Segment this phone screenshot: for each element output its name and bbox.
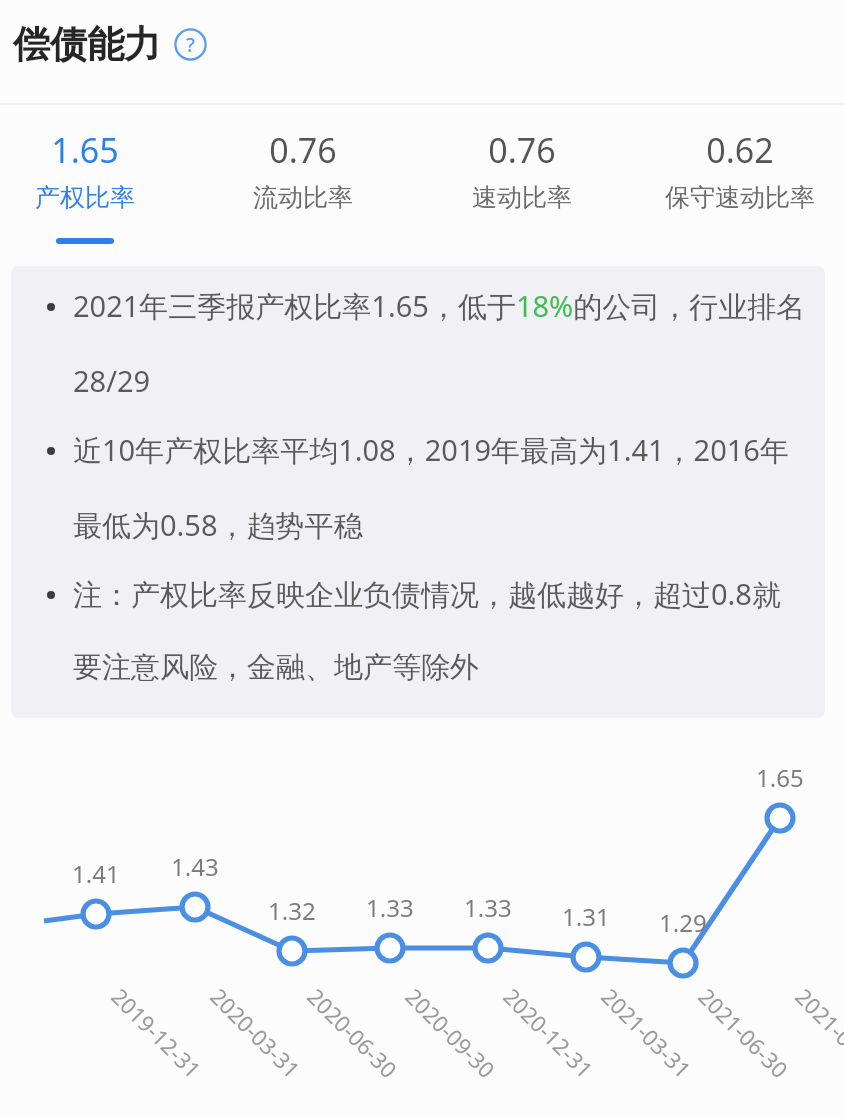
- staticText: 注：产权比率反映企业负债情况，越低越好，超过0.8就要注意风险，金融、地产等除外: [73, 574, 809, 685]
- button[interactable]: 1.65: [0, 127, 187, 244]
- staticText: 偿债能力: [13, 21, 161, 68]
- staticText: 0.76: [269, 127, 337, 173]
- staticText: 速动比率: [472, 182, 572, 213]
- staticText: 流动比率: [253, 182, 353, 213]
- staticText: 0.76: [488, 127, 556, 173]
- staticText: 近10年产权比率平均1.08，2019年最高为1.41，2016年最低为0.58…: [73, 430, 809, 544]
- button[interactable]: 帮助说明: [174, 28, 207, 61]
- staticText: 产权比率: [35, 182, 135, 213]
- staticText: 2021年三季报产权比率1.65，低于18%的公司，行业排名28/29: [73, 286, 809, 400]
- button[interactable]: 0.76: [201, 127, 405, 213]
- staticText: 0.62: [706, 127, 774, 173]
- button[interactable]: 0.62: [638, 127, 842, 213]
- button[interactable]: 0.76: [420, 127, 624, 213]
- staticText: ?: [186, 31, 195, 58]
- staticText: 1.65: [51, 127, 119, 173]
- staticText: 保守速动比率: [665, 182, 815, 213]
